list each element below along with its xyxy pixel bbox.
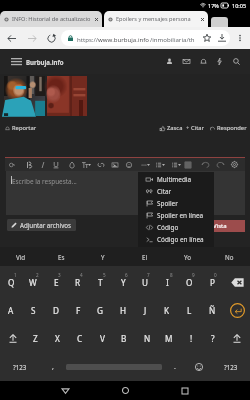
button[interactable]: F	[67, 296, 89, 324]
staticText: 9	[192, 272, 195, 278]
button[interactable]: V	[91, 324, 113, 352]
button[interactable]: Epoilers y mensajes persona	[104, 11, 208, 27]
button[interactable]: Text colour	[66, 158, 78, 171]
button[interactable]: C	[69, 324, 91, 352]
button[interactable]: D	[45, 296, 67, 324]
button[interactable]: Backspace	[224, 268, 250, 296]
button[interactable]: Profile	[161, 49, 178, 74]
button[interactable]: Emoji	[188, 352, 210, 381]
button[interactable]: B	[113, 324, 135, 352]
button[interactable]: M	[158, 324, 180, 352]
staticText: 7	[147, 272, 150, 278]
button[interactable]: Erase formatting	[6, 158, 18, 171]
button[interactable]: Spoiler en línea	[138, 209, 214, 221]
button[interactable]: Table	[182, 158, 194, 171]
button[interactable]: !	[180, 324, 202, 352]
button[interactable]: Home	[113, 381, 137, 400]
button[interactable]: INFO: Historial de actualizacio	[0, 11, 102, 27]
button[interactable]: Enter	[224, 296, 250, 324]
button[interactable]: Messages	[178, 49, 195, 74]
button[interactable]: https://	[61, 30, 230, 46]
button[interactable]: E	[45, 268, 67, 296]
button[interactable]: Vid	[0, 247, 41, 266]
button[interactable]: +	[186, 124, 204, 132]
button[interactable]: P	[201, 268, 223, 296]
button[interactable]: .	[162, 352, 188, 381]
button[interactable]: Underline	[50, 158, 62, 171]
button[interactable]: H	[112, 296, 134, 324]
staticText: 8	[170, 272, 173, 278]
button[interactable]: Space	[66, 352, 162, 381]
button[interactable]: Alerts	[195, 49, 212, 74]
button[interactable]: Y	[112, 268, 134, 296]
button[interactable]: Vista previa	[213, 220, 245, 232]
button[interactable]: T	[89, 268, 111, 296]
button[interactable]: Código en línea	[138, 233, 214, 245]
button[interactable]: Bookmark	[198, 30, 216, 46]
button[interactable]: Menu	[8, 49, 25, 74]
staticText: R	[75, 277, 81, 288]
button[interactable]: U	[134, 268, 156, 296]
button[interactable]: S	[22, 296, 44, 324]
button[interactable]: Shift	[224, 324, 250, 352]
button[interactable]: Citar	[138, 185, 214, 197]
button[interactable]: J	[134, 296, 156, 324]
button[interactable]: Back	[2, 27, 20, 49]
button[interactable]: Trends	[211, 49, 228, 74]
button[interactable]: Yo	[166, 247, 208, 266]
button[interactable]: ?123	[0, 352, 40, 381]
button[interactable]: Font size	[79, 158, 91, 171]
button[interactable]: Z	[24, 324, 46, 352]
button[interactable]: ?123	[212, 352, 250, 381]
button[interactable]: Spoiler	[138, 197, 214, 209]
button[interactable]: Zasca	[160, 124, 183, 132]
button[interactable]: Reload	[42, 27, 60, 49]
button[interactable]: Back	[53, 381, 77, 400]
button[interactable]: Y	[82, 247, 124, 266]
button[interactable]: More options	[231, 27, 248, 49]
button[interactable]: Bullet list	[153, 158, 165, 171]
button[interactable]: Italic	[37, 158, 49, 171]
staticText: Vid	[16, 253, 26, 261]
button[interactable]: Reportar	[5, 124, 37, 132]
button[interactable]: Escribe la respuesta...	[6, 171, 245, 215]
button[interactable]: W	[22, 268, 44, 296]
button[interactable]: No	[208, 247, 250, 266]
button[interactable]: Ñ	[201, 296, 223, 324]
button[interactable]: Emoji	[123, 158, 135, 171]
staticText: Q	[8, 277, 15, 288]
button[interactable]: Shift	[0, 324, 26, 352]
button[interactable]: Redo	[214, 158, 227, 171]
button[interactable]: N	[136, 324, 158, 352]
button[interactable]: Undo	[199, 158, 212, 171]
button[interactable]: Download	[213, 30, 230, 46]
button[interactable]: Bold	[23, 158, 35, 171]
button[interactable]: Recents	[173, 381, 197, 400]
button[interactable]: R	[67, 268, 89, 296]
button[interactable]: I	[156, 268, 178, 296]
button[interactable]: ?	[202, 324, 224, 352]
button[interactable]: ,	[40, 352, 66, 381]
button[interactable]: El	[124, 247, 166, 266]
button[interactable]: Es	[41, 247, 82, 266]
button[interactable]: Numbered list	[169, 158, 181, 171]
button[interactable]: K	[156, 296, 178, 324]
button[interactable]: Image	[109, 158, 121, 171]
button[interactable]: Q	[0, 268, 22, 296]
button[interactable]: Editor settings	[228, 158, 241, 171]
button[interactable]: Link	[95, 158, 107, 171]
button[interactable]: Código	[138, 221, 214, 233]
button[interactable]: L	[178, 296, 200, 324]
button[interactable]: X	[46, 324, 68, 352]
button[interactable]: Forward	[23, 27, 41, 49]
button[interactable]: Responder	[210, 124, 247, 132]
staticText: E	[54, 277, 59, 288]
button[interactable]: New tab	[211, 17, 228, 27]
button[interactable]: Insert	[138, 158, 150, 171]
button[interactable]: A	[0, 296, 22, 324]
button[interactable]: Search	[228, 49, 245, 74]
button[interactable]: Multimedia	[138, 173, 214, 185]
button[interactable]: Adjuntar archivos	[7, 219, 76, 231]
button[interactable]: O	[178, 268, 200, 296]
button[interactable]: G	[89, 296, 111, 324]
